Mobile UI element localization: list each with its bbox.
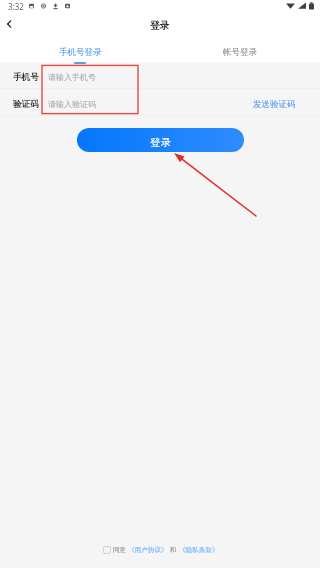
button[interactable]: 《用户协议》 [128,546,168,554]
button[interactable]: 同意协议 [103,546,111,554]
staticText: 发送验证码 [253,99,296,110]
staticText: 手机号登录 [59,47,102,58]
staticText: 同意 [113,546,126,554]
button[interactable]: 发送验证码 [253,97,296,108]
staticText: 验证码 [13,99,39,110]
button[interactable]: 返回 [0,14,18,34]
staticText: 请输入手机号 [48,72,96,82]
staticText: 手机号 [13,72,39,83]
button[interactable]: 帐号登录 [160,34,320,62]
staticText: 3:32 [8,1,24,12]
staticText: 帐号登录 [223,47,257,58]
staticText: 登录 [150,136,171,149]
staticText: 和 [170,546,177,554]
staticText: 登录 [150,20,170,32]
button[interactable]: 登录 [77,128,244,152]
staticText: 请输入验证码 [48,99,96,109]
button[interactable]: 手机号登录 [0,34,160,62]
button[interactable]: 《隐私条款》 [179,546,219,554]
